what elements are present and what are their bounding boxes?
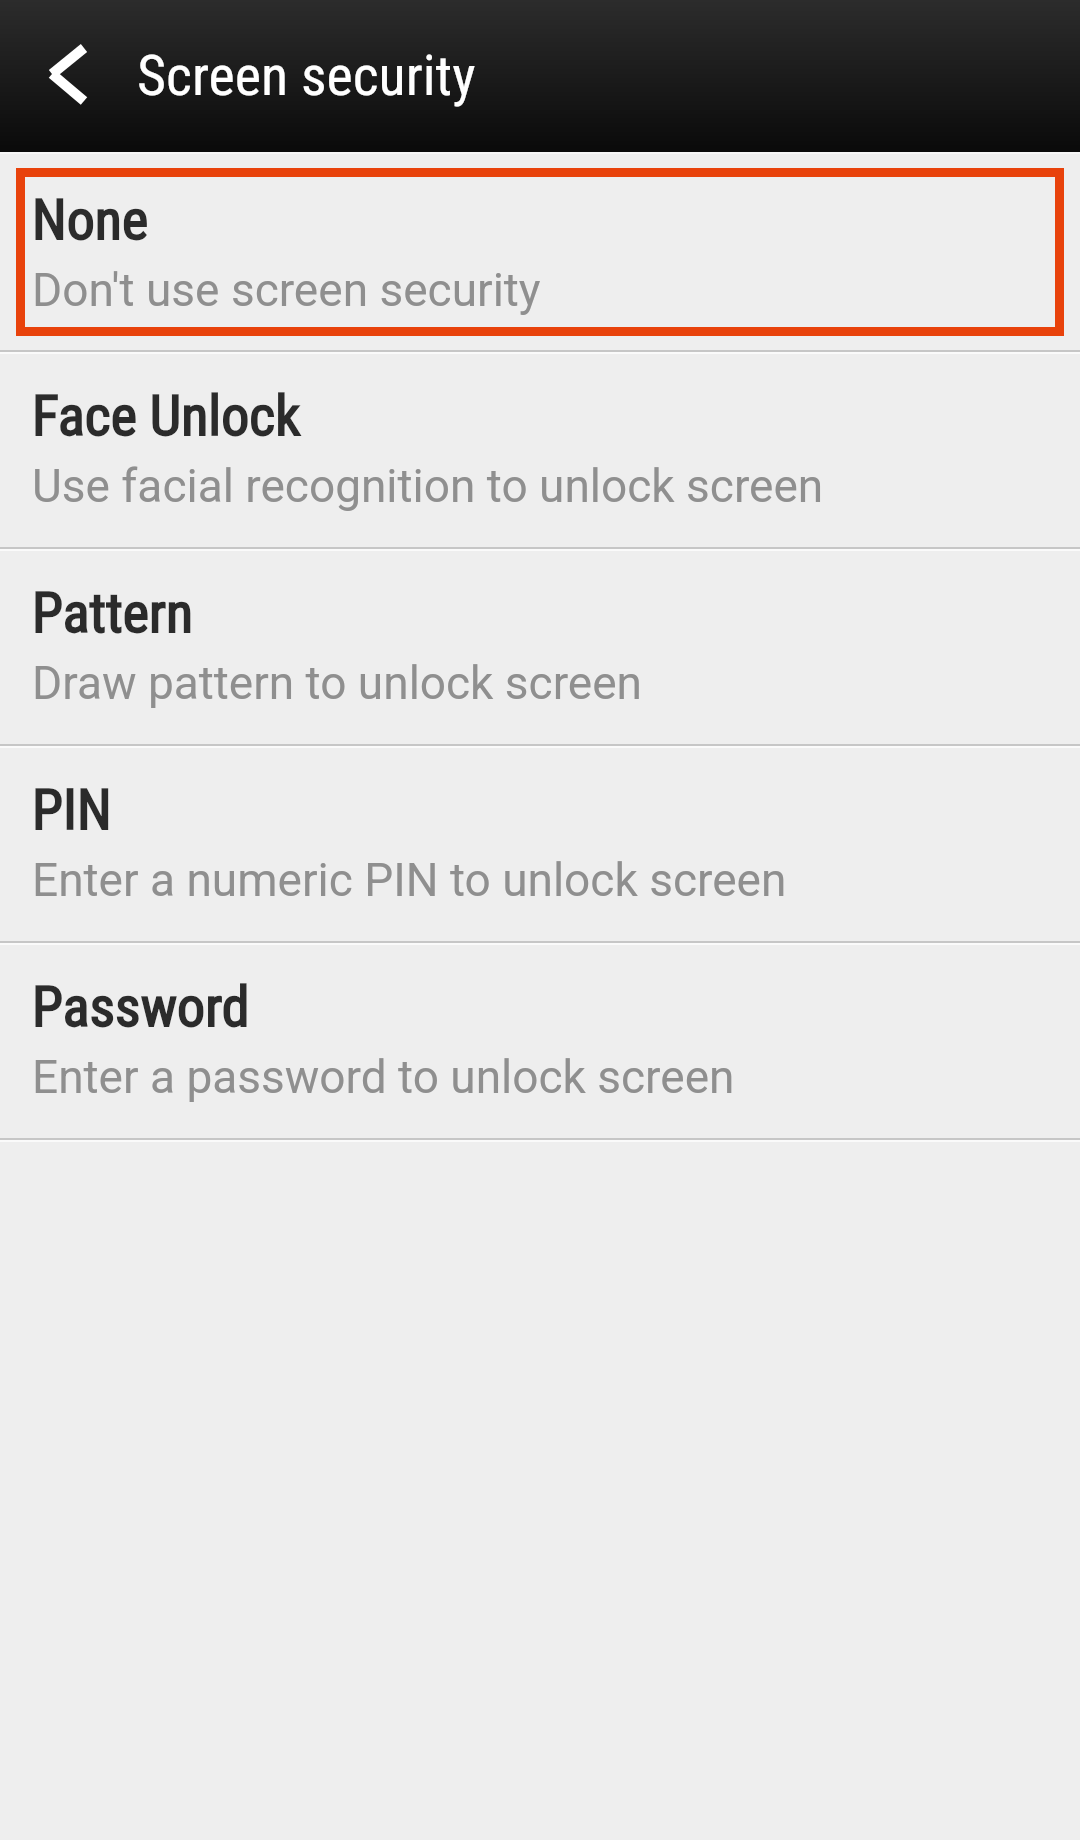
staticText: Face Unlock <box>32 383 301 449</box>
staticText: Screen security <box>137 43 476 109</box>
button[interactable]: PIN <box>0 748 1080 941</box>
staticText: Password <box>32 974 250 1040</box>
button[interactable]: Screen security <box>0 0 1080 152</box>
staticText: Enter a password to unlock screen <box>32 1050 735 1104</box>
staticText: PIN <box>32 777 112 843</box>
staticText: Pattern <box>32 580 194 646</box>
button[interactable]: None <box>0 154 1080 350</box>
staticText: Draw pattern to unlock screen <box>32 656 643 710</box>
button[interactable]: Face Unlock <box>0 354 1080 547</box>
button[interactable]: Pattern <box>0 551 1080 744</box>
staticText: None <box>32 187 149 253</box>
button[interactable]: Password <box>0 945 1080 1138</box>
staticText: Don't use screen security <box>32 263 541 317</box>
staticText: Enter a numeric PIN to unlock screen <box>32 853 787 907</box>
staticText: Use facial recognition to unlock screen <box>32 459 824 513</box>
